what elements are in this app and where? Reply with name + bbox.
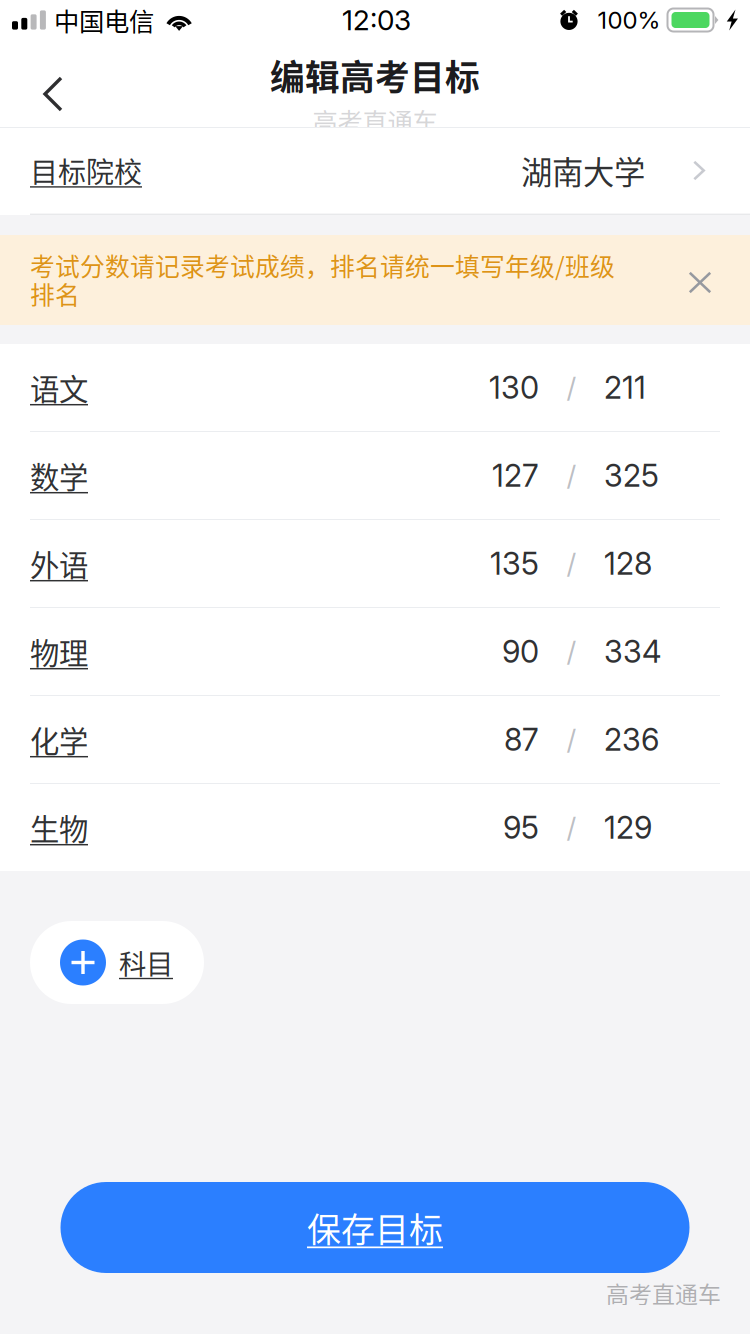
staticText: 语文 (30, 366, 88, 409)
staticText: 12:03 (342, 3, 411, 37)
staticText: 高考直通车 (312, 102, 437, 139)
button[interactable]: 目标院校 (0, 128, 750, 213)
staticText: 科目 (119, 943, 173, 982)
staticText: / (566, 371, 576, 404)
staticText: 编辑高考目标 (270, 50, 480, 100)
staticText: 湖南大学 (521, 148, 645, 193)
button[interactable]: 科目 (30, 921, 204, 1004)
staticText: / (566, 547, 576, 580)
staticText: 90 (502, 633, 539, 670)
button[interactable]: Back (0, 40, 100, 127)
button[interactable]: 数学 (0, 432, 750, 519)
staticText: / (566, 811, 576, 844)
staticText: 130 (489, 369, 539, 406)
staticText: / (566, 635, 576, 668)
button[interactable]: 物理 (0, 608, 750, 695)
staticText: 87 (504, 721, 539, 758)
staticText: 236 (604, 721, 659, 758)
staticText: 334 (604, 633, 661, 670)
staticText: 物理 (30, 630, 88, 673)
staticText: 128 (604, 545, 652, 582)
staticText: 129 (604, 809, 652, 846)
staticText: / (566, 723, 576, 756)
staticText: 211 (604, 369, 646, 406)
button[interactable]: Close (669, 238, 731, 327)
button[interactable]: 保存目标 (60, 1182, 689, 1273)
button[interactable]: 化学 (0, 696, 750, 783)
staticText: 127 (492, 457, 539, 494)
staticText: 100% (597, 5, 660, 34)
staticText: 95 (503, 809, 539, 846)
button[interactable]: 语文 (0, 344, 750, 431)
staticText: 保存目标 (307, 1203, 443, 1252)
staticText: 目标院校 (30, 150, 142, 191)
staticText: 化学 (30, 718, 88, 761)
button[interactable]: 生物 (0, 784, 750, 871)
staticText: 考试分数请记录考试成绩，排名请统一填写年级/班级 (30, 247, 615, 283)
button[interactable]: 外语 (0, 520, 750, 607)
staticText: 135 (490, 545, 539, 582)
staticText: 中国电信 (54, 2, 154, 38)
staticText: 生物 (30, 806, 88, 849)
staticText: 325 (604, 457, 659, 494)
staticText: / (566, 459, 576, 492)
staticText: 外语 (30, 542, 88, 585)
staticText: 排名 (30, 276, 80, 312)
staticText: 数学 (30, 454, 88, 497)
staticText: 高考直通车 (606, 1276, 721, 1310)
